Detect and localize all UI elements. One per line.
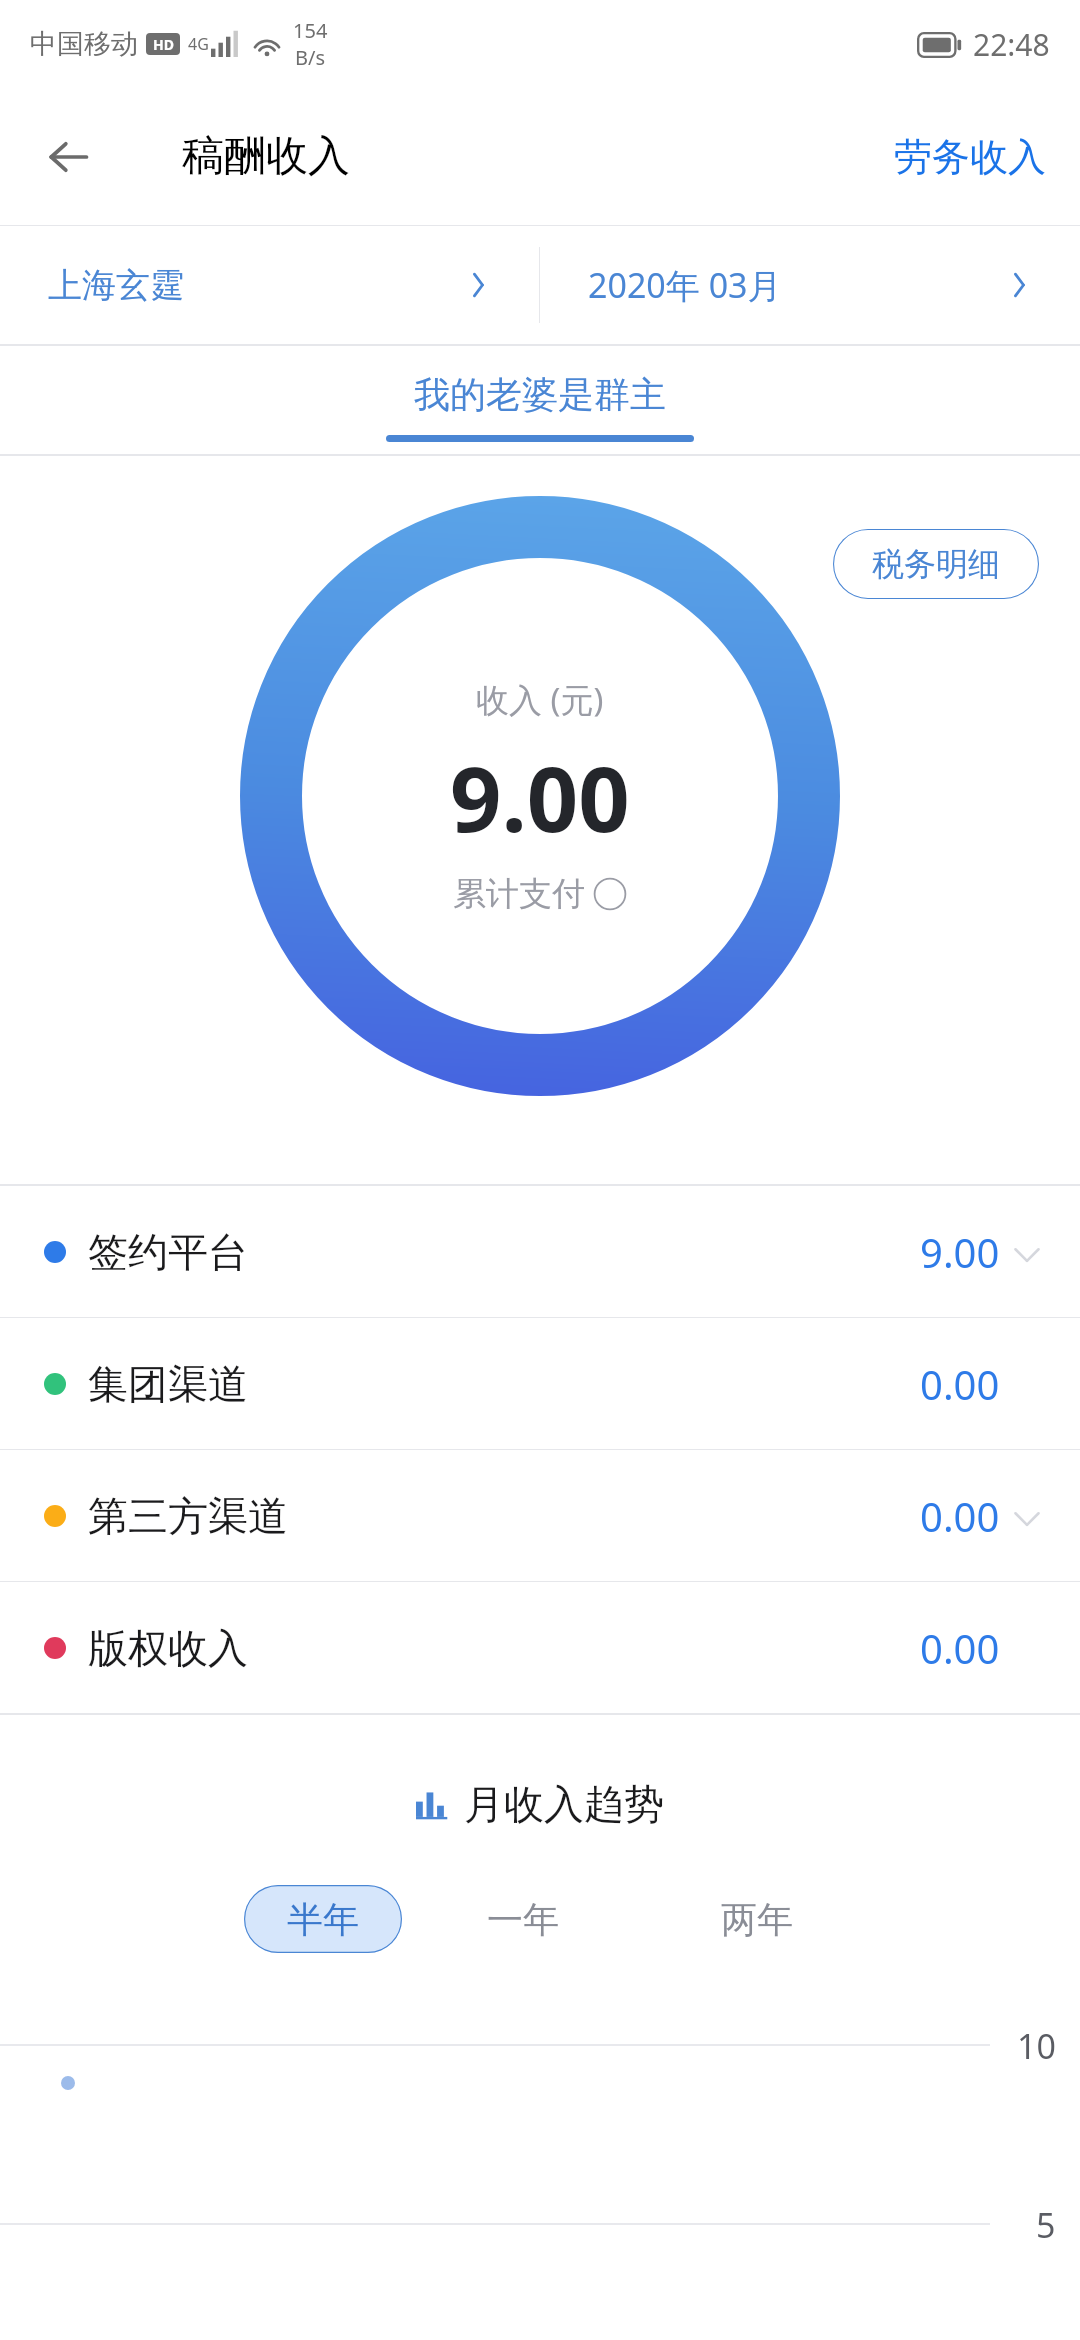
staticText: 上海玄霆 <box>48 264 184 307</box>
button[interactable]: Back <box>22 111 114 203</box>
staticText: 2020年 03月 <box>588 262 782 308</box>
staticText: 一年 <box>487 1897 559 1942</box>
button[interactable]: 累计支付 <box>453 873 627 915</box>
staticText: 9.00 <box>450 736 630 859</box>
button[interactable]: 上海玄霆 <box>0 226 539 344</box>
staticText: 4G <box>188 33 209 55</box>
staticText: 5 <box>1036 2202 1056 2248</box>
staticText: 版权收入 <box>88 1623 248 1673</box>
staticText: 9.00 <box>920 1225 1000 1279</box>
staticText: 22:48 <box>973 24 1050 65</box>
staticText: 月收入趋势 <box>464 1779 664 1829</box>
button[interactable]: 劳务收入 <box>882 119 1058 195</box>
button[interactable]: 集团渠道 <box>0 1318 1080 1449</box>
staticText: 我的老婆是群主 <box>414 372 666 417</box>
button[interactable]: 版权收入 <box>0 1582 1080 1713</box>
staticText: B/s <box>295 44 326 71</box>
button[interactable]: 2020年 03月 <box>540 226 1080 344</box>
staticText: 154 <box>293 17 328 44</box>
staticText: 0.00 <box>920 1489 1000 1543</box>
staticText: 累计支付 <box>453 873 585 915</box>
staticText: HD <box>153 35 174 54</box>
button[interactable]: 我的老婆是群主 <box>386 358 694 442</box>
staticText: 劳务收入 <box>894 133 1046 181</box>
button[interactable]: 签约平台 <box>0 1186 1080 1317</box>
staticText: 中国移动 <box>30 27 138 61</box>
staticText: 第三方渠道 <box>88 1491 288 1541</box>
staticText: 0.00 <box>920 1621 1000 1675</box>
staticText: 两年 <box>721 1897 793 1942</box>
staticText: 签约平台 <box>88 1227 248 1277</box>
staticText: 税务明细 <box>872 544 1000 584</box>
staticText: 集团渠道 <box>88 1359 248 1409</box>
button[interactable]: 两年 <box>678 1885 836 1953</box>
staticText: 半年 <box>287 1897 359 1942</box>
staticText: 0.00 <box>920 1357 1000 1411</box>
button[interactable]: 半年 <box>244 1885 402 1953</box>
button[interactable]: 一年 <box>444 1885 602 1953</box>
staticText: 收入 (元) <box>476 677 604 722</box>
staticText: 稿酬收入 <box>182 130 350 183</box>
button[interactable]: 税务明细 <box>832 528 1040 600</box>
button[interactable]: 第三方渠道 <box>0 1450 1080 1581</box>
staticText: 10 <box>1017 2023 1056 2069</box>
